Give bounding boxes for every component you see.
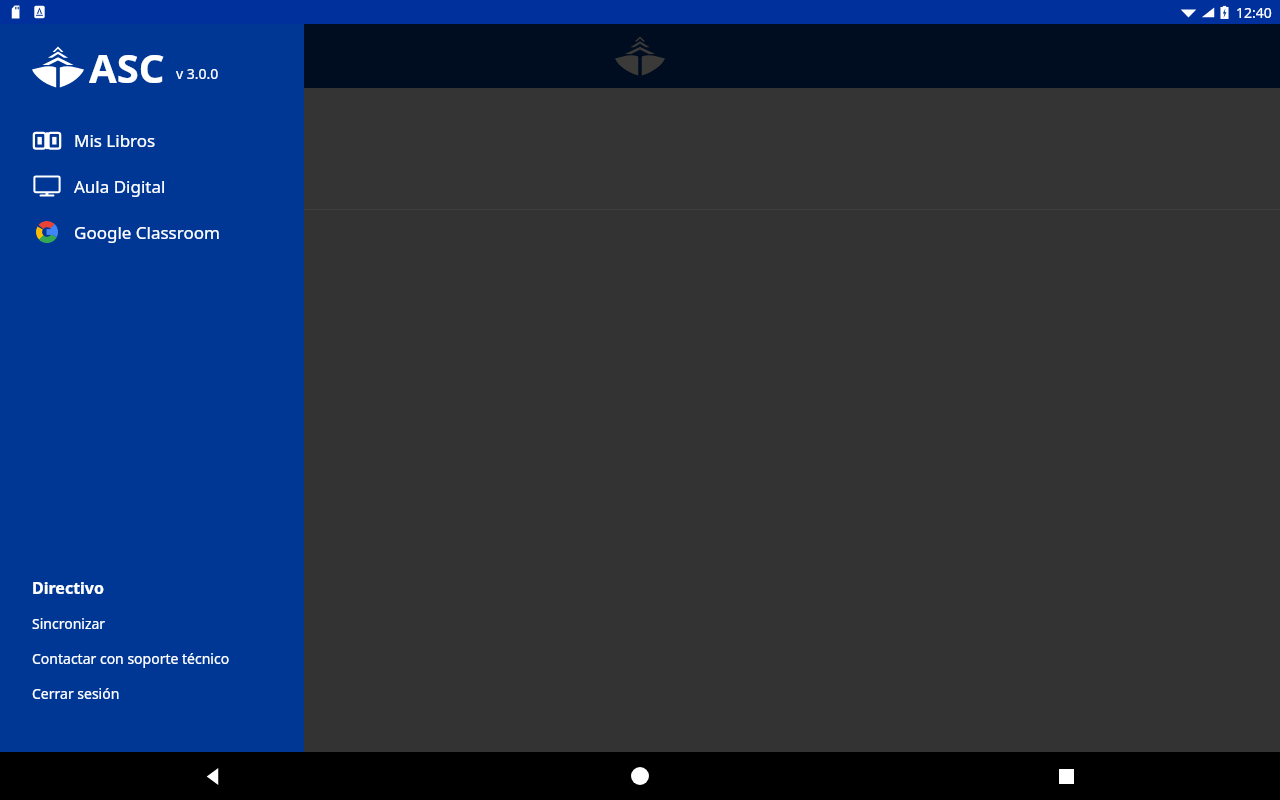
staticText: v 3.0.0 [176,64,219,83]
staticText: Mis Libros [74,129,156,152]
button[interactable]: Google Classroom [0,209,304,255]
button[interactable]: Home [426,752,853,800]
other: Mis Libros [33,128,61,152]
staticText: Cerrar sesión [32,684,120,703]
staticText: Google Classroom [74,221,220,244]
button[interactable]: Sincronizar [0,606,304,641]
staticText: Contactar con soporte técnico [32,649,230,668]
button[interactable]: Contactar con soporte técnico [0,641,304,676]
staticText: 12:40 [1236,3,1272,22]
button[interactable]: Cerrar sesión [0,676,304,711]
button[interactable]: Recents [853,752,1280,800]
other: ASC [615,36,665,76]
staticText: Sincronizar [32,614,106,633]
staticText: Aula Digital [74,175,166,198]
button[interactable]: Back [0,752,426,800]
button[interactable]: Aula Digital [0,163,304,209]
button[interactable]: ASC logo [0,24,304,110]
staticText: Directivo [32,577,105,599]
other: ASC logo [32,46,84,88]
other: Aula Digital [33,174,61,198]
staticText: ASC [89,40,165,94]
button[interactable]: Mis Libros [0,117,304,163]
other: Google Classroom [33,220,61,244]
button[interactable]: Directivo [0,570,304,606]
